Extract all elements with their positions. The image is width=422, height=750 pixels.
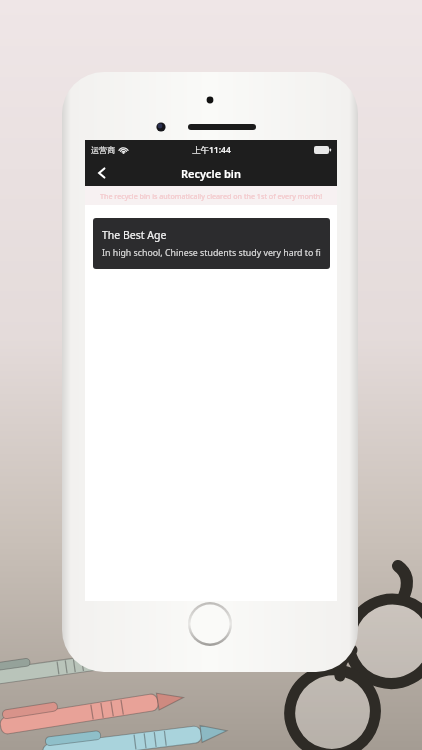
- button[interactable]: The Best Age: [93, 218, 330, 269]
- button[interactable]: Home: [188, 602, 232, 646]
- button[interactable]: Back: [85, 160, 119, 186]
- staticText: The Best Age: [102, 228, 167, 242]
- staticText: 上午11:44: [192, 144, 231, 156]
- staticText: 运营商: [91, 145, 115, 155]
- staticText: Recycle bin: [181, 166, 242, 181]
- staticText: In high school, Chinese students study v…: [102, 247, 321, 259]
- staticText: The recycle bin is automatically cleared…: [100, 191, 323, 201]
